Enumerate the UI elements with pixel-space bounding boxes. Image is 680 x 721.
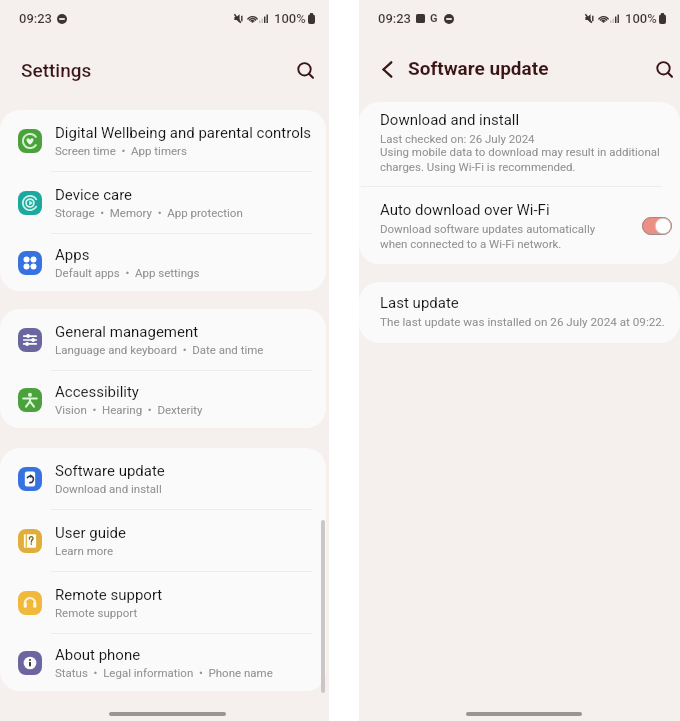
staticText: About phone: [55, 646, 141, 664]
staticText: Device care: [55, 186, 133, 204]
button[interactable]: Last update: [359, 282, 680, 343]
button[interactable]: User guide: [0, 510, 326, 571]
staticText: 100%: [274, 11, 306, 26]
staticText: 09:23: [378, 11, 411, 26]
staticText: Apps: [55, 246, 90, 264]
staticText: Software update: [408, 57, 549, 79]
staticText: Storage • Memory • App protection: [55, 206, 243, 219]
button[interactable]: Back: [376, 56, 400, 80]
staticText: Screen time • App timers: [55, 144, 187, 157]
staticText: Download and install: [380, 111, 520, 129]
button[interactable]: Auto download over Wi-Fi: [359, 187, 680, 264]
button[interactable]: Digital Wellbeing and parental controls: [0, 110, 326, 171]
button[interactable]: Apps: [0, 234, 326, 291]
staticText: Learn more: [55, 544, 114, 557]
staticText: Last update: [380, 294, 459, 312]
staticText: Settings: [21, 59, 92, 81]
button[interactable]: Software update: [0, 448, 326, 509]
staticText: Download and install: [55, 482, 162, 495]
button[interactable]: Download and install: [359, 102, 680, 186]
button[interactable]: Accessibility: [0, 371, 326, 428]
staticText: Download software updates automatically …: [380, 222, 605, 251]
staticText: Software update: [55, 462, 165, 480]
staticText: General management: [55, 323, 199, 341]
staticText: 09:23: [19, 11, 52, 26]
button[interactable]: Search: [293, 58, 317, 82]
button[interactable]: Device care: [0, 172, 326, 233]
staticText: Using mobile data to download may result…: [380, 145, 662, 174]
button[interactable]: Search: [652, 57, 676, 81]
staticText: Last checked on: 26 July 2024: [380, 132, 535, 145]
staticText: G: [430, 12, 438, 25]
staticText: Remote support: [55, 606, 138, 619]
staticText: Language and keyboard • Date and time: [55, 343, 264, 356]
staticText: Vision • Hearing • Dexterity: [55, 403, 203, 416]
staticText: Remote support: [55, 586, 163, 604]
staticText: Accessibility: [55, 383, 139, 401]
button[interactable]: General management: [0, 309, 326, 370]
staticText: The last update was installed on 26 July…: [380, 315, 665, 329]
button[interactable]: Auto download over Wi-Fi: [642, 217, 672, 235]
staticText: 100%: [625, 11, 657, 26]
button[interactable]: Remote support: [0, 572, 326, 633]
staticText: Default apps • App settings: [55, 266, 200, 279]
staticText: Auto download over Wi-Fi: [380, 201, 550, 219]
staticText: Digital Wellbeing and parental controls: [55, 124, 312, 142]
staticText: Status • Legal information • Phone name: [55, 666, 273, 679]
button[interactable]: About phone: [0, 634, 326, 691]
staticText: User guide: [55, 524, 126, 542]
